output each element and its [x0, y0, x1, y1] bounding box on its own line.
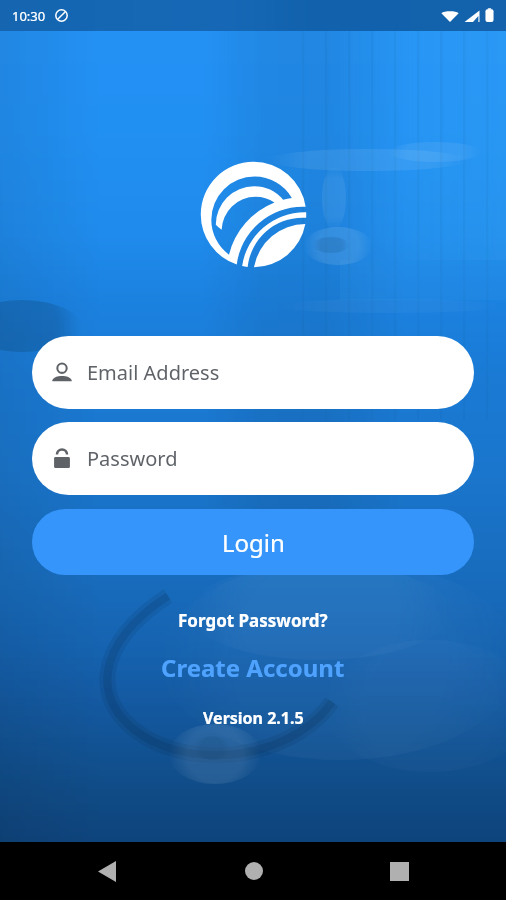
staticText: Email Address [87, 359, 220, 386]
button[interactable]: Email Address [32, 336, 474, 409]
button[interactable]: Create Account [157, 647, 349, 688]
staticText: 10:30 [12, 7, 46, 25]
other: App logo [198, 159, 309, 270]
button[interactable]: Password [32, 422, 474, 495]
staticText: Version 2.1.5 [203, 707, 304, 729]
button[interactable]: Back [83, 847, 131, 895]
button[interactable]: Forgot Password? [174, 605, 332, 636]
button[interactable]: Login [32, 509, 474, 575]
staticText: Login [222, 526, 285, 559]
staticText: Password [87, 445, 178, 472]
button[interactable]: Home [230, 847, 278, 895]
button[interactable]: Recent apps [375, 847, 423, 895]
